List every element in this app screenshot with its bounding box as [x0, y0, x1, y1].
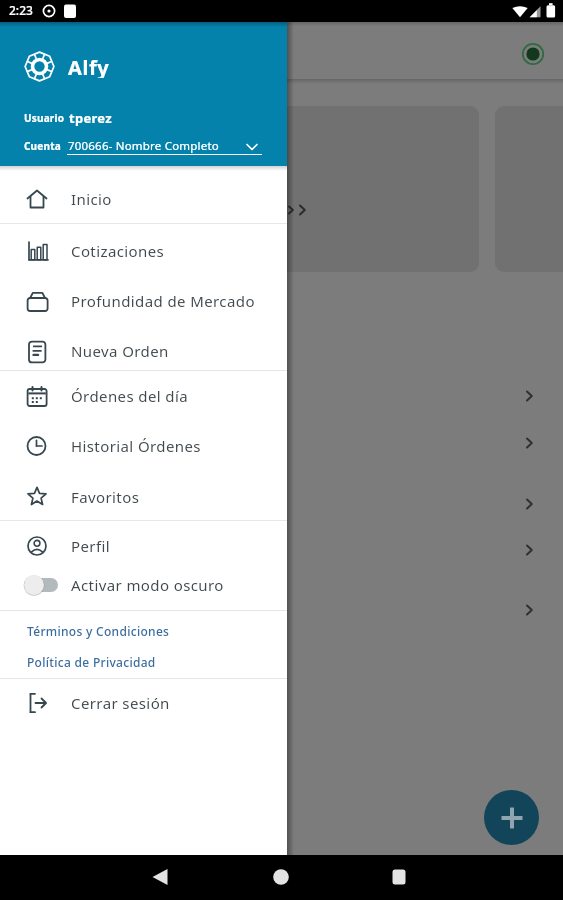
button[interactable] [384, 865, 414, 890]
button[interactable]: Nueva Orden [0, 327, 287, 375]
staticText: Profundidad de Mercado [71, 291, 255, 311]
staticText: Historial Órdenes [71, 436, 201, 456]
button[interactable]: Historial Órdenes [0, 422, 287, 470]
staticText: Alfy [68, 54, 110, 78]
staticText: tperez [69, 109, 113, 127]
staticText: Órdenes del día [71, 386, 189, 406]
button[interactable]: Términos y Condiciones [27, 619, 170, 643]
staticText: 700666- Nombre Completo [68, 138, 219, 154]
staticText: Cotizaciones [71, 241, 165, 261]
button[interactable]: Cotizaciones [0, 227, 287, 275]
staticText: Activar modo oscuro [71, 575, 224, 595]
staticText: Inicio [71, 189, 112, 209]
button[interactable]: Profundidad de Mercado [0, 277, 287, 325]
staticText: 2:23 [9, 2, 33, 18]
button[interactable] [145, 865, 175, 890]
staticText: Cuenta [24, 139, 61, 153]
button[interactable]: Órdenes del día [0, 372, 287, 420]
button[interactable]: Cerrar sesión [0, 679, 287, 727]
staticText: Nueva Orden [71, 341, 169, 361]
button[interactable]: Política de Privacidad [27, 650, 156, 674]
staticText: Perfil [71, 536, 111, 556]
button[interactable] [266, 865, 296, 890]
button[interactable] [484, 790, 539, 845]
staticText: Favoritos [71, 487, 140, 507]
staticText: Política de Privacidad [27, 654, 156, 670]
staticText: Términos y Condiciones [27, 623, 170, 639]
button[interactable]: Favoritos [0, 473, 287, 521]
staticText: Usuario [24, 111, 65, 125]
button[interactable]: Alfy [0, 22, 287, 166]
staticText: Cerrar sesión [71, 693, 170, 713]
button[interactable]: Activar modo oscuro [0, 561, 287, 609]
button[interactable]: Perfil [0, 522, 287, 570]
button[interactable]: Inicio [0, 175, 287, 223]
